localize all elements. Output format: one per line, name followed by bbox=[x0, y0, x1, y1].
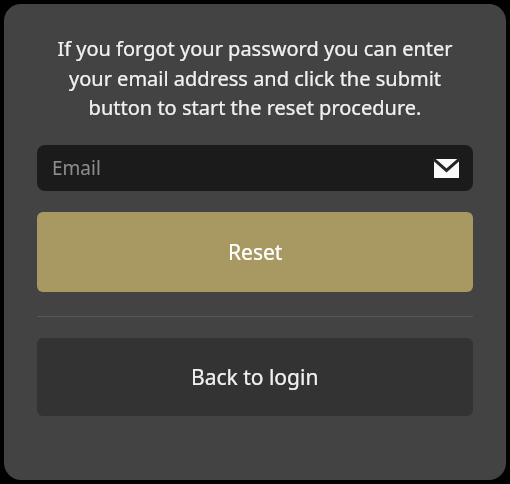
staticText: Back to login bbox=[191, 363, 319, 392]
staticText: Reset bbox=[228, 238, 283, 267]
other: Email bbox=[434, 159, 459, 178]
staticText: If you forgot your password you can ente… bbox=[37, 35, 473, 121]
button[interactable]: Email bbox=[37, 145, 473, 191]
button[interactable]: Reset bbox=[37, 212, 473, 292]
staticText: Email bbox=[52, 155, 101, 181]
button[interactable]: Back to login bbox=[37, 338, 473, 416]
